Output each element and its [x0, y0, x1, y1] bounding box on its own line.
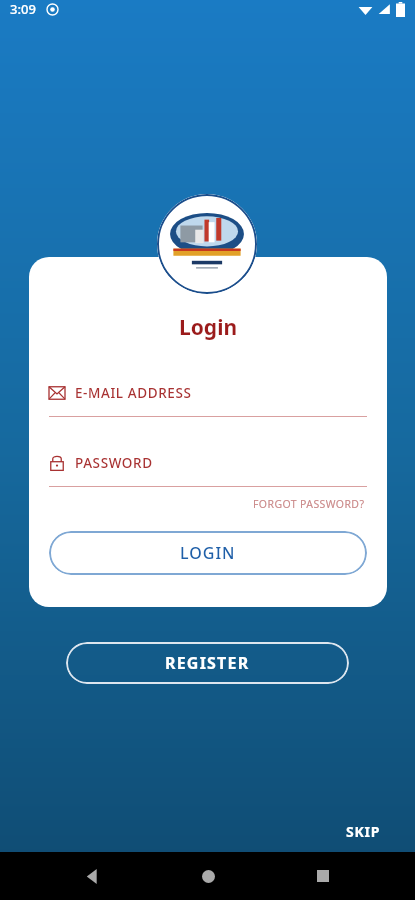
- button[interactable]: REGISTER: [66, 642, 349, 684]
- button[interactable]: LOGIN: [49, 531, 367, 575]
- staticText: REGISTER: [165, 652, 250, 674]
- staticText: FORGOT PASSWORD?: [253, 497, 365, 511]
- staticText: LOGIN: [180, 542, 236, 564]
- button[interactable]: PASSWORD: [49, 454, 367, 487]
- staticText: PASSWORD: [75, 454, 153, 472]
- button[interactable]: Back: [69, 853, 115, 899]
- staticText: E-MAIL ADDRESS: [75, 384, 192, 402]
- button[interactable]: FORGOT PASSWORD?: [251, 495, 367, 513]
- button[interactable]: E-MAIL ADDRESS: [49, 384, 367, 417]
- button[interactable]: SKIP: [340, 818, 387, 845]
- button[interactable]: Recent apps: [300, 853, 346, 899]
- button[interactable]: Home: [185, 853, 231, 899]
- staticText: SKIP: [346, 822, 381, 841]
- staticText: Login: [179, 313, 238, 342]
- staticText: 3:09: [10, 0, 36, 18]
